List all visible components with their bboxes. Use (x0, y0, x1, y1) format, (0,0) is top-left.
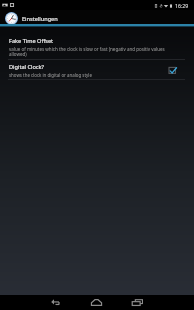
staticText: Fake Time Offset (9, 37, 54, 45)
staticText: 16:29 (175, 2, 189, 9)
button[interactable]: Fake Time Offset (0, 27, 194, 59)
button[interactable]: Digital Clock toggle (166, 64, 178, 76)
staticText: Digital Clock? (9, 63, 44, 71)
staticText: shows the clock in digital or analog sty… (9, 72, 92, 78)
button[interactable]: Recent apps (128, 295, 147, 310)
button[interactable]: Digital Clock? (0, 60, 194, 79)
button[interactable]: Einstellungen (0, 10, 194, 24)
staticText: value of minutes which the clock is slow… (9, 46, 174, 57)
staticText: Einstellungen (22, 15, 58, 23)
button[interactable]: Home (87, 295, 106, 310)
button[interactable]: Back (46, 295, 65, 310)
